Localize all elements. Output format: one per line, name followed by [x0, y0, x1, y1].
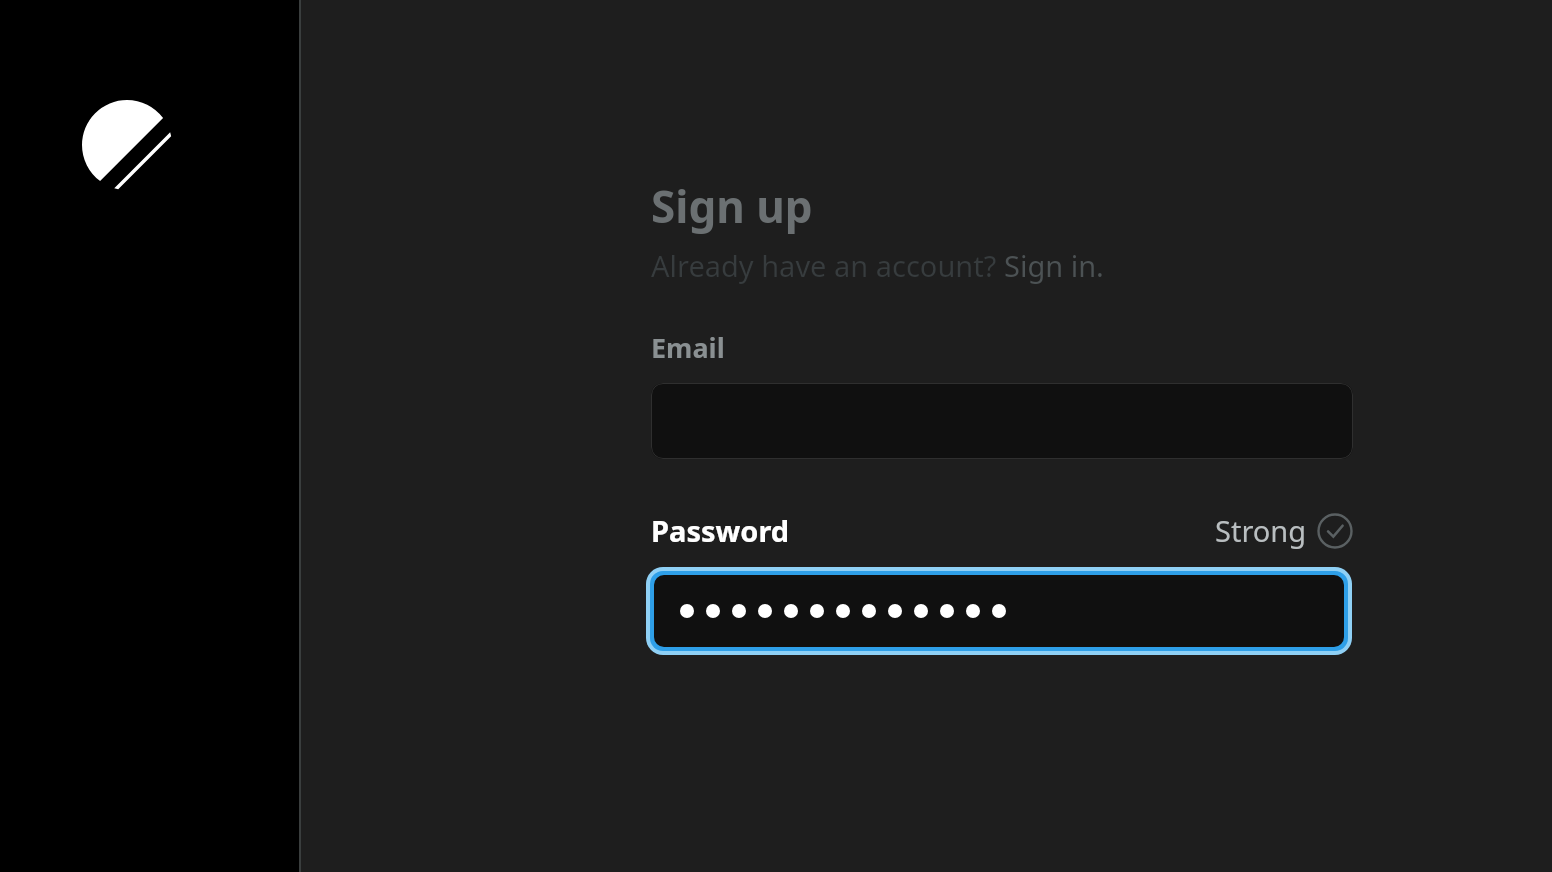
staticText: Sign up — [651, 176, 813, 236]
button[interactable]: Sign in. — [1004, 246, 1104, 285]
staticText: Sign in. — [1004, 246, 1104, 285]
button[interactable] — [654, 575, 1344, 647]
other: Password strength: strong — [1317, 513, 1353, 549]
button[interactable]: App logo — [82, 100, 172, 190]
staticText: Password — [651, 511, 790, 550]
staticText: Strong — [1215, 511, 1307, 550]
staticText: Email — [651, 329, 725, 366]
button[interactable] — [651, 383, 1353, 459]
staticText: Already have an account? — [651, 246, 1004, 285]
